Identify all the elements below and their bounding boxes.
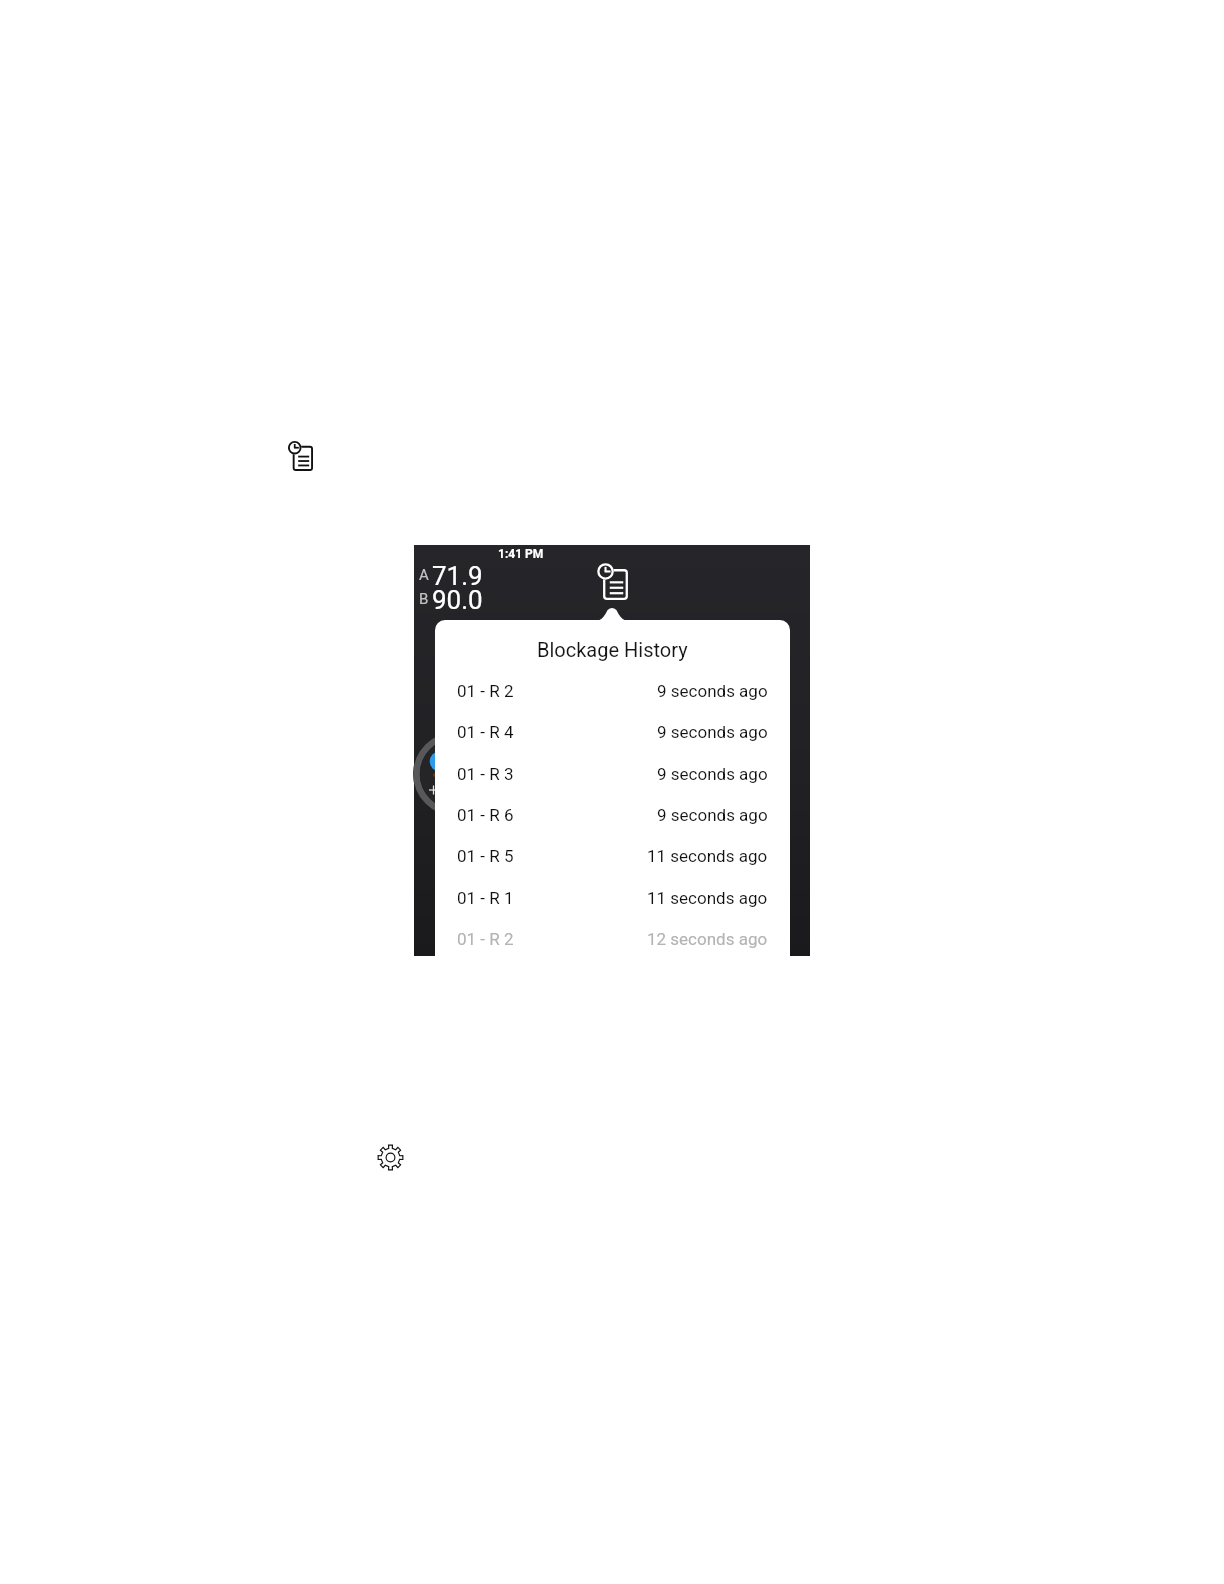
staticText: 9 seconds ago [657, 722, 768, 742]
button[interactable]: Blockage history [596, 562, 628, 600]
button[interactable]: 01 - R 2 [435, 918, 790, 959]
staticText: B [419, 590, 429, 608]
staticText: 01 - R 2 [457, 681, 514, 701]
staticText: 9 seconds ago [657, 681, 768, 701]
button[interactable]: 01 - R 1 [435, 877, 790, 918]
staticText: 11 seconds ago [647, 888, 768, 908]
staticText: 90.0 [432, 585, 483, 609]
button[interactable]: 01 - R 5 [435, 835, 790, 876]
button[interactable]: 01 - R 3 [435, 753, 790, 794]
staticText: A [419, 566, 429, 584]
staticText: 01 - R 6 [457, 805, 514, 825]
staticText: 11 seconds ago [647, 846, 768, 866]
button[interactable]: 01 - R 2 [435, 670, 790, 711]
staticText: 01 - R 1 [457, 888, 514, 908]
staticText: 12 seconds ago [647, 929, 768, 949]
staticText: 01 - R 2 [457, 929, 514, 949]
staticText: 71.9 [432, 561, 483, 585]
staticText: Blockage History [537, 638, 688, 661]
button[interactable]: Blockage history [287, 440, 313, 471]
staticText: 01 - R 3 [457, 764, 514, 784]
staticText: 01 - R 4 [457, 722, 514, 742]
button[interactable]: Settings [378, 1145, 403, 1170]
staticText: 1:41 PM [498, 547, 544, 561]
button[interactable]: 01 - R 6 [435, 794, 790, 835]
staticText: 01 - R 5 [457, 846, 514, 866]
staticText: 9 seconds ago [657, 764, 768, 784]
button[interactable]: 01 - R 4 [435, 711, 790, 752]
staticText: 9 seconds ago [657, 805, 768, 825]
